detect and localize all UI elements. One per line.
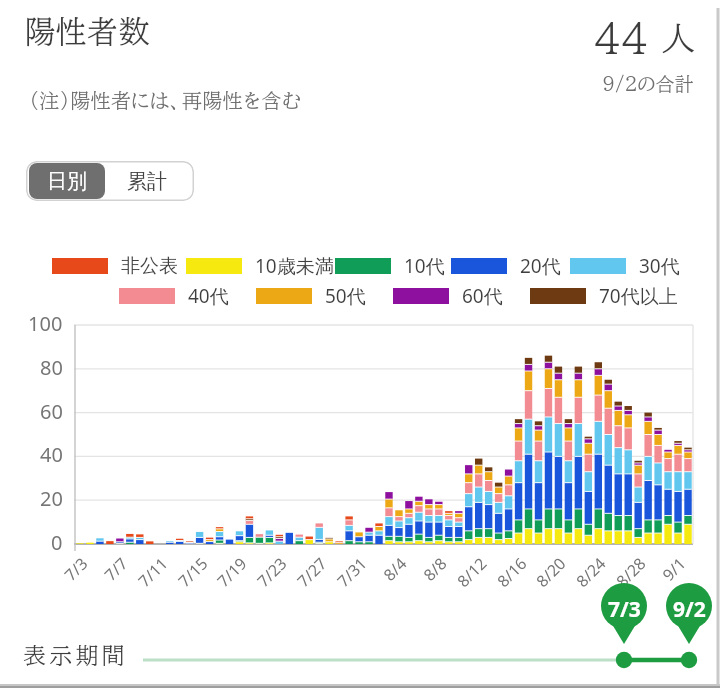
staticText: 7/3: [608, 595, 641, 624]
button[interactable]: 20代: [451, 253, 561, 279]
button[interactable]: 10代: [335, 253, 445, 279]
staticText: 9/2の合計: [602, 74, 694, 93]
button[interactable]: [600, 583, 648, 670]
staticText: 7/19: [212, 552, 252, 592]
staticText: 8/8: [418, 552, 452, 585]
staticText: 累計: [127, 169, 167, 194]
staticText: 7/7: [99, 552, 133, 585]
staticText: 9/2: [673, 595, 706, 624]
staticText: 80: [40, 354, 63, 381]
button[interactable]: 累計: [105, 163, 189, 199]
button[interactable]: 60代: [393, 283, 503, 309]
staticText: 人: [661, 21, 695, 55]
staticText: 8/28: [611, 552, 651, 592]
button[interactable]: 10歳未満: [186, 253, 334, 279]
staticText: 40: [40, 441, 63, 468]
staticText: 陽性者数: [24, 16, 150, 47]
staticText: 60: [40, 398, 63, 425]
staticText: 40代: [188, 283, 229, 309]
button[interactable]: [665, 583, 713, 670]
staticText: 10代: [404, 253, 445, 279]
button[interactable]: 50代: [256, 283, 366, 309]
staticText: 7/27: [292, 552, 332, 592]
staticText: 7/15: [173, 552, 213, 592]
button[interactable]: 30代: [570, 253, 680, 279]
staticText: 7/23: [252, 552, 292, 592]
staticText: 7/11: [133, 552, 173, 592]
staticText: 20代: [520, 253, 561, 279]
button[interactable]: 40代: [119, 283, 229, 309]
staticText: 44: [594, 19, 649, 59]
staticText: 日別: [47, 169, 87, 194]
staticText: 10歳未満: [255, 253, 334, 279]
staticText: 8/12: [452, 552, 492, 592]
staticText: 30代: [639, 253, 680, 279]
staticText: 7/31: [332, 552, 372, 592]
staticText: 100: [28, 310, 63, 337]
staticText: 8/24: [571, 552, 611, 592]
staticText: 50代: [325, 283, 366, 309]
staticText: 70代以上: [599, 283, 678, 309]
staticText: 非公表: [121, 254, 178, 278]
staticText: 20: [40, 485, 63, 512]
button[interactable]: 非公表: [52, 253, 178, 279]
staticText: 表示期間: [23, 644, 128, 667]
staticText: 60代: [462, 283, 503, 309]
staticText: 8/16: [492, 552, 532, 592]
staticText: 7/3: [59, 552, 93, 585]
staticText: 8/4: [378, 552, 412, 585]
staticText: 8/20: [531, 552, 571, 592]
staticText: 9/1: [657, 552, 691, 585]
staticText: 0: [51, 529, 63, 556]
button[interactable]: 70代以上: [530, 283, 678, 309]
staticText: （注）陽性者には、再陽性を含む: [29, 90, 303, 110]
button[interactable]: 日別: [29, 163, 105, 199]
